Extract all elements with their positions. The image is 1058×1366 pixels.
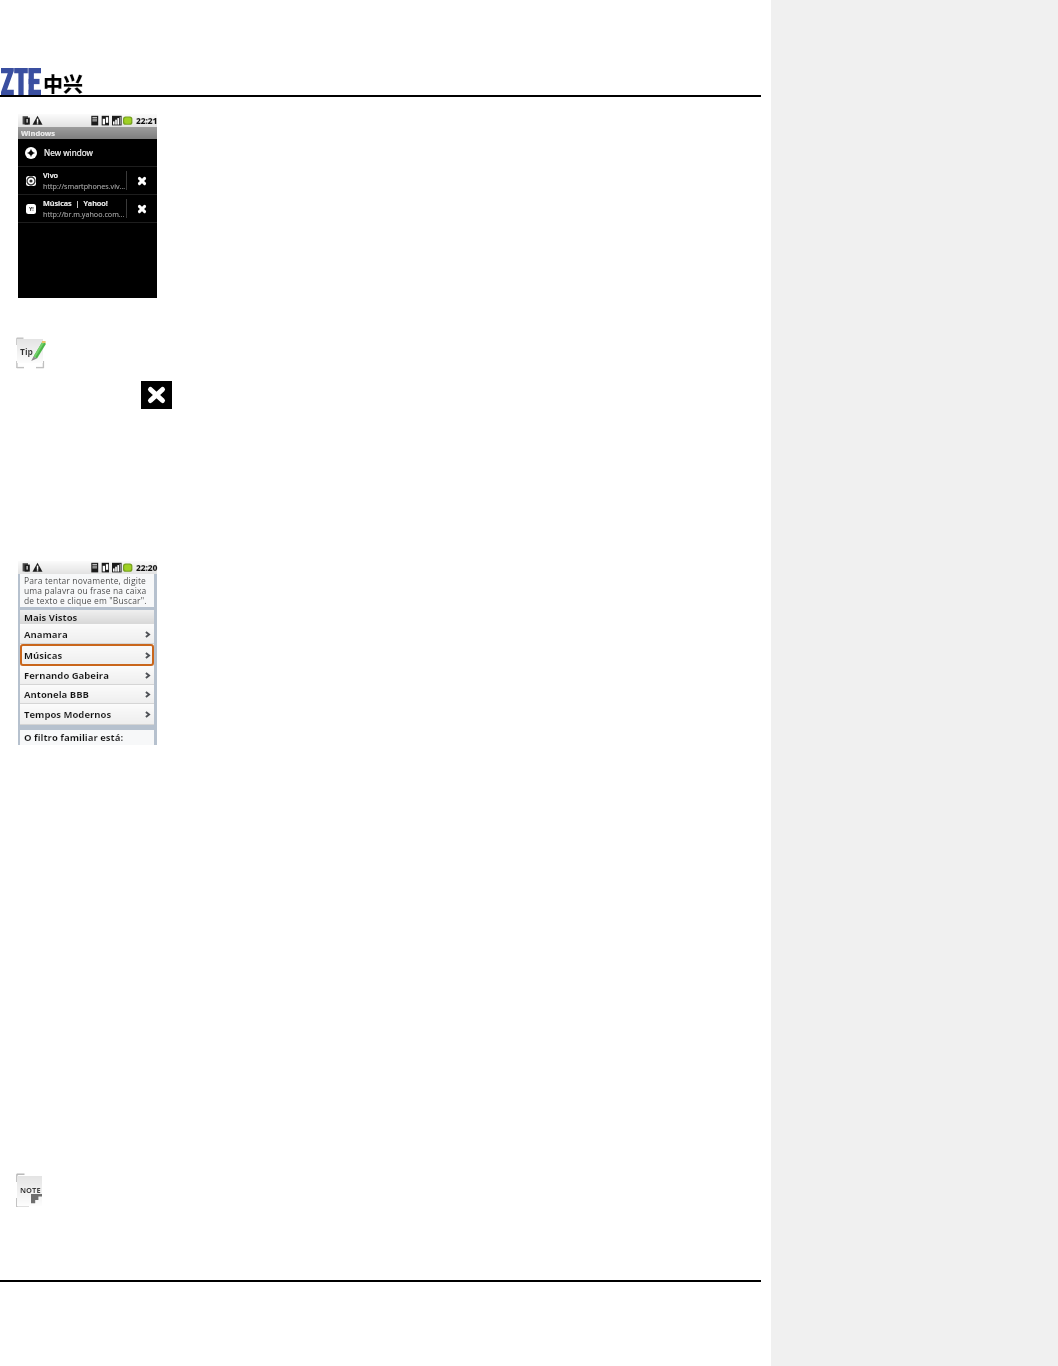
staticText: Músicas | Yahoo! [43,198,108,208]
button[interactable]: Vivo [18,167,157,194]
staticText: Y! [29,206,34,213]
staticText: Windows [21,128,56,138]
staticText: http://br.m.yahoo.com/w/... [43,209,126,219]
staticText: O filtro familiar está: [24,731,124,744]
button[interactable]: Close [141,381,172,409]
button[interactable]: New window [18,139,157,166]
staticText: http://smartphones.vivo.c... [43,181,126,191]
button[interactable]: Músicas [20,644,154,666]
staticText: Músicas [24,649,145,662]
staticText: Anamara [24,628,145,641]
staticText: Antonela BBB [24,688,145,701]
button[interactable]: Y! [18,195,157,222]
staticText: Tip [20,346,33,358]
button[interactable]: Antonela BBB [20,685,154,704]
button[interactable]: Close tab [127,195,157,222]
staticText: NOTE [20,1185,41,1195]
staticText: 中兴 [43,69,83,98]
staticText: Tempos Modernos [24,708,145,721]
staticText: Mais Vistos [24,611,78,624]
button[interactable]: Anamara [20,624,154,644]
button[interactable]: Fernando Gabeira [20,666,154,685]
button[interactable]: Close tab [127,167,157,194]
staticText: 22:20 [136,562,158,574]
staticText: Fernando Gabeira [24,669,145,682]
button[interactable]: Tempos Modernos [20,704,154,725]
staticText: 22:21 [136,115,158,127]
staticText: Vivo [43,170,59,180]
staticText: Para tentar novamente, digite uma palavr… [24,575,154,606]
staticText: New window [44,147,93,158]
